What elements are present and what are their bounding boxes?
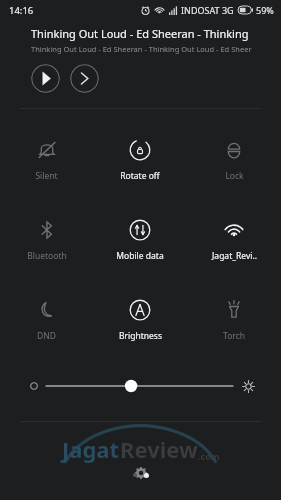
staticText: INDOSAT 3G bbox=[181, 4, 234, 16]
staticText: Mobile data bbox=[116, 250, 164, 262]
staticText: Bluetooth bbox=[27, 250, 67, 262]
staticText: Review bbox=[120, 434, 198, 464]
button[interactable]: Page 2 bbox=[144, 473, 149, 478]
button[interactable]: Play bbox=[31, 64, 60, 93]
staticText: Thinking Out Loud - Ed Sheeran - Thinkin… bbox=[31, 44, 252, 54]
button[interactable]: Rotate off bbox=[93, 121, 187, 201]
button[interactable]: Settings bbox=[130, 462, 152, 484]
button[interactable]: Bluetooth bbox=[0, 201, 93, 281]
staticText: Jagat bbox=[62, 434, 120, 464]
button[interactable]: DND bbox=[0, 281, 93, 361]
staticText: Torch bbox=[223, 330, 245, 342]
button[interactable]: Jagat_Revi.. bbox=[187, 201, 281, 281]
button[interactable] bbox=[30, 373, 255, 399]
staticText: Rotate off bbox=[120, 170, 160, 182]
staticText: Lock bbox=[225, 170, 244, 182]
button[interactable]: Silent bbox=[0, 121, 93, 201]
staticText: 14:16 bbox=[9, 4, 34, 17]
staticText: .com bbox=[198, 450, 220, 462]
button[interactable]: Next track bbox=[70, 64, 99, 93]
button[interactable]: Mobile data bbox=[93, 201, 187, 281]
staticText: Silent bbox=[35, 170, 58, 182]
button[interactable]: Brightness bbox=[93, 281, 187, 361]
staticText: Thinking Out Loud - Ed Sheeran - Thinkin… bbox=[31, 26, 265, 41]
staticText: 59% bbox=[256, 4, 274, 16]
staticText: DND bbox=[37, 330, 56, 342]
button[interactable]: Torch bbox=[187, 281, 281, 361]
button[interactable]: Page 1 bbox=[133, 473, 137, 477]
button[interactable]: Lock bbox=[187, 121, 281, 201]
staticText: Jagat_Revi.. bbox=[212, 250, 257, 262]
staticText: Brightness bbox=[119, 330, 162, 342]
